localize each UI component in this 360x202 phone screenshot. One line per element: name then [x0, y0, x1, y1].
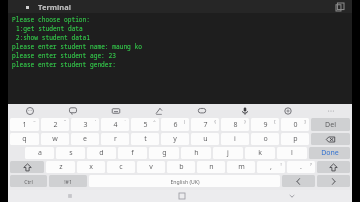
staticText: b — [179, 162, 184, 172]
button[interactable]: Shift — [10, 161, 44, 173]
staticText: 3 — [83, 120, 88, 130]
button[interactable]: Home — [154, 190, 209, 202]
button[interactable]: 0 — [281, 118, 309, 131]
staticText: ' — [95, 119, 96, 125]
staticText: 2:show student data1 — [12, 33, 90, 41]
button[interactable]: Ctrl — [10, 175, 47, 187]
button[interactable]: Left — [282, 175, 315, 187]
staticText: p — [293, 134, 298, 144]
button[interactable]: 3 — [71, 118, 99, 131]
button[interactable]: j — [213, 147, 243, 159]
button[interactable]: Right — [317, 175, 350, 187]
staticText: w — [52, 134, 58, 144]
button[interactable]: English (UK) — [89, 175, 280, 187]
button[interactable]: l — [277, 147, 307, 159]
button[interactable]: Emoji — [8, 104, 51, 117]
button[interactable]: z — [46, 161, 75, 173]
button[interactable]: Shift — [317, 161, 350, 173]
staticText: n — [209, 162, 214, 172]
button[interactable]: , — [257, 161, 285, 173]
button[interactable]: Del — [311, 118, 350, 131]
button[interactable]: Settings — [266, 104, 309, 117]
staticText: , — [270, 162, 272, 172]
button[interactable]: k — [245, 147, 275, 159]
staticText: o — [263, 134, 268, 144]
staticText: u — [203, 134, 208, 144]
button[interactable]: f — [118, 147, 147, 159]
button[interactable]: Recents — [42, 190, 98, 202]
button[interactable]: Copy — [333, 0, 346, 13]
button[interactable]: o — [251, 133, 279, 145]
button[interactable]: s — [56, 147, 85, 159]
button[interactable]: q — [10, 133, 39, 145]
button[interactable]: 1 — [10, 118, 39, 131]
button[interactable]: Clipboard — [94, 104, 137, 117]
button[interactable]: 8 — [221, 118, 249, 131]
button[interactable]: a — [25, 147, 54, 159]
staticText: Please choose option: — [12, 15, 90, 23]
staticText: | — [183, 119, 186, 125]
staticText: 7 — [203, 120, 208, 130]
staticText: please enter student age: 23 — [12, 51, 116, 59]
staticText: !#1 — [64, 178, 72, 185]
button[interactable]: h — [181, 147, 211, 159]
staticText: f — [131, 148, 134, 158]
button[interactable]: Tab — [22, 2, 32, 12]
staticText: 1:get student data — [12, 24, 83, 32]
button[interactable]: w — [41, 133, 69, 145]
button[interactable]: u — [191, 133, 219, 145]
staticText: . — [300, 162, 302, 172]
button[interactable]: 2 — [41, 118, 69, 131]
button[interactable]: !#1 — [49, 175, 87, 187]
button[interactable]: i — [221, 133, 249, 145]
staticText: e — [83, 134, 87, 144]
button[interactable]: n — [197, 161, 225, 173]
button[interactable]: p — [281, 133, 309, 145]
button[interactable]: 6 — [161, 118, 189, 131]
button[interactable]: Hide keyboard — [264, 190, 319, 202]
button[interactable]: y — [161, 133, 189, 145]
button[interactable]: Backspace — [311, 133, 350, 145]
staticText: 0 — [293, 120, 298, 130]
staticText: [ — [274, 119, 276, 125]
button[interactable]: 9 — [251, 118, 279, 131]
button[interactable]: . — [287, 161, 315, 173]
staticText: r — [114, 134, 117, 144]
button[interactable]: Translate — [137, 104, 180, 117]
staticText: Del — [325, 120, 336, 130]
staticText: 8 — [233, 120, 238, 130]
button[interactable]: Microphone — [223, 104, 266, 117]
button[interactable]: 7 — [191, 118, 219, 131]
button[interactable]: m — [227, 161, 255, 173]
staticText: Done — [321, 148, 339, 158]
staticText: g — [162, 148, 167, 158]
button[interactable]: Done — [309, 147, 350, 159]
button[interactable]: Sticker — [51, 104, 94, 117]
button[interactable]: r — [101, 133, 129, 145]
button[interactable]: c — [107, 161, 135, 173]
staticText: t — [144, 134, 147, 144]
button[interactable]: g — [149, 147, 179, 159]
staticText: please enter student gender: — [12, 60, 116, 68]
staticText: ] — [304, 119, 306, 125]
staticText: ! — [280, 162, 282, 168]
button[interactable]: 4 — [101, 118, 129, 131]
staticText: ? — [310, 162, 312, 168]
staticText: 5 — [143, 120, 148, 130]
staticText: 9 — [263, 120, 268, 130]
button[interactable]: b — [167, 161, 195, 173]
button[interactable]: x — [77, 161, 105, 173]
button[interactable]: e — [71, 133, 99, 145]
button[interactable]: v — [137, 161, 165, 173]
staticText: ` — [124, 119, 126, 125]
button[interactable]: Voice typing — [180, 104, 223, 117]
button[interactable]: t — [131, 133, 159, 145]
staticText: 4 — [113, 120, 118, 130]
button[interactable]: 5 — [131, 118, 159, 131]
staticText: English (UK) — [170, 178, 200, 185]
button[interactable]: d — [87, 147, 116, 159]
staticText: c — [119, 162, 123, 172]
staticText: please enter student name: maung ko — [12, 42, 142, 50]
staticText: Ctrl — [24, 178, 33, 185]
